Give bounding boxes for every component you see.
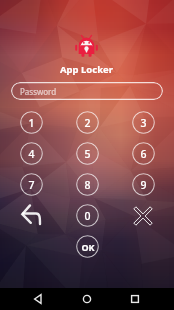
button[interactable]: 8 <box>76 173 99 196</box>
button[interactable]: Clear <box>132 205 154 227</box>
staticText: 0 <box>84 209 91 223</box>
button[interactable]: Recent apps <box>123 288 148 310</box>
staticText: 5 <box>84 147 91 161</box>
staticText: 6 <box>140 147 147 161</box>
button[interactable]: 5 <box>76 142 99 165</box>
button[interactable]: 9 <box>132 173 155 196</box>
button[interactable]: Back <box>26 288 51 310</box>
staticText: 3 <box>140 116 147 130</box>
button[interactable]: OK <box>76 235 99 258</box>
button[interactable]: 7 <box>20 173 43 196</box>
button[interactable]: 2 <box>76 111 99 134</box>
button[interactable]: 0 <box>76 204 99 227</box>
button[interactable]: Backspace <box>19 203 43 227</box>
staticText: Password <box>20 86 57 97</box>
staticText: 7 <box>28 178 35 192</box>
staticText: 1 <box>28 116 35 130</box>
staticText: 8 <box>84 178 91 192</box>
button[interactable]: 1 <box>20 111 43 134</box>
button[interactable]: 3 <box>132 111 155 134</box>
staticText: 9 <box>140 178 147 192</box>
button[interactable]: 4 <box>20 142 43 165</box>
staticText: 4 <box>28 147 35 161</box>
button[interactable]: 6 <box>132 142 155 165</box>
staticText: App Locker <box>60 63 114 76</box>
other: App Locker logo <box>75 35 98 57</box>
staticText: 2 <box>84 116 91 130</box>
button[interactable]: Home <box>75 288 100 310</box>
button[interactable]: Password <box>11 82 163 100</box>
staticText: OK <box>81 241 95 253</box>
